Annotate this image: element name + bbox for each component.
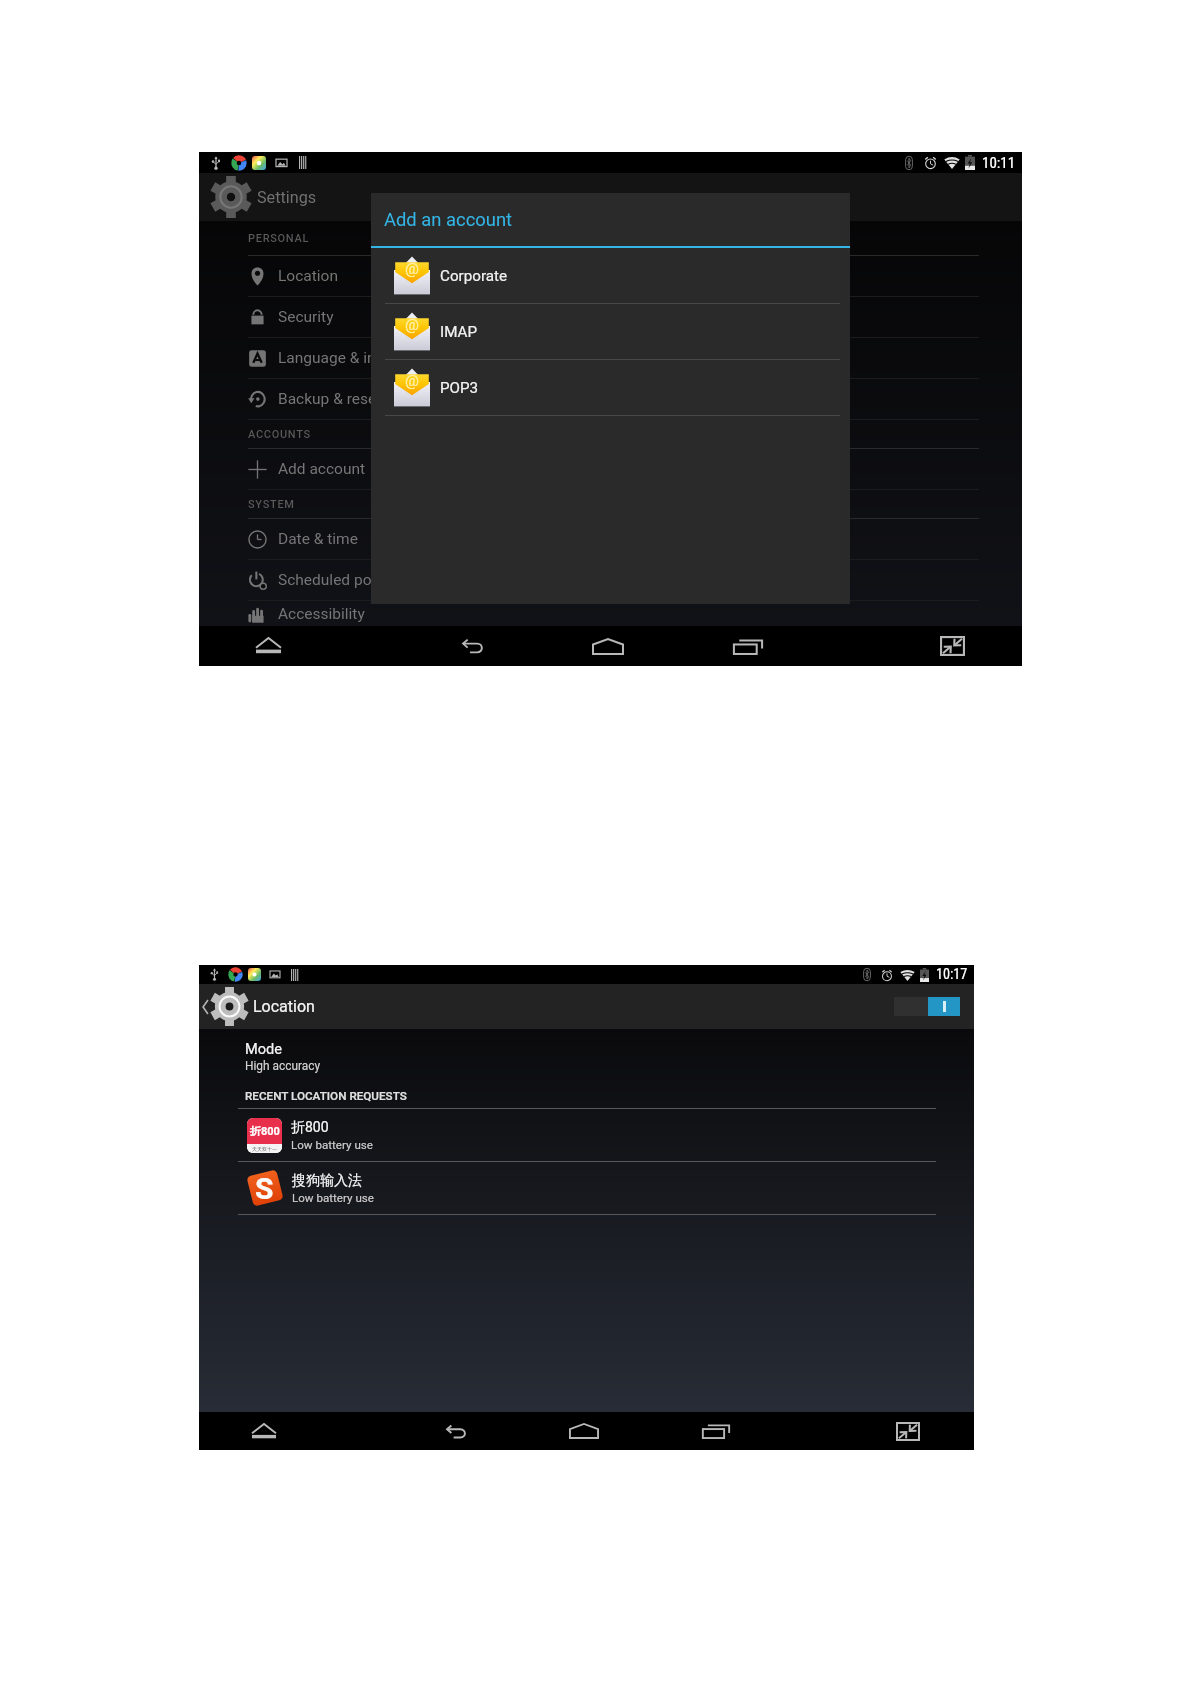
staticText: Language & input [278, 349, 398, 367]
staticText: 折800 [291, 1119, 329, 1137]
staticText: @ [405, 260, 419, 278]
button[interactable]: Accessibility [248, 601, 979, 626]
button[interactable]: Shrink screen [842, 1412, 974, 1450]
staticText: PERSONAL [248, 232, 310, 245]
button[interactable]: S [247, 1162, 936, 1214]
staticText: Location [253, 997, 315, 1016]
button[interactable]: Back [402, 626, 542, 666]
staticText: Add account [278, 460, 366, 478]
staticText: Location [278, 267, 338, 285]
button[interactable]: Recent apps [650, 1412, 782, 1450]
staticText: RECENT LOCATION REQUESTS [245, 1089, 407, 1103]
staticText: Low battery use [291, 1138, 373, 1152]
button[interactable]: 折800 [247, 1109, 936, 1161]
button[interactable]: Location on [894, 997, 960, 1016]
button[interactable]: Location [248, 256, 979, 296]
staticText: @ [405, 316, 419, 334]
button[interactable]: @ [385, 304, 840, 359]
staticText: 10:11 [982, 154, 1016, 172]
staticText: Add an account [384, 209, 513, 231]
button[interactable]: Home [518, 1412, 650, 1450]
button[interactable]: Mode [245, 1040, 935, 1073]
staticText: SYSTEM [248, 498, 295, 511]
staticText: Mode [245, 1040, 283, 1057]
button[interactable]: Backup & reset [248, 379, 979, 419]
staticText: POP3 [440, 379, 479, 397]
button[interactable]: Navigate up [199, 984, 327, 1029]
button[interactable]: Hide navigation [198, 626, 338, 666]
button[interactable]: Add account [248, 449, 979, 489]
staticText: Scheduled power on & off [278, 571, 455, 589]
button[interactable]: Security [248, 297, 979, 337]
staticText: S [255, 1171, 274, 1206]
button[interactable]: Date & time [248, 519, 979, 559]
staticText: 10:17 [936, 966, 968, 983]
button[interactable]: Home [538, 626, 678, 666]
staticText: Corporate [440, 267, 508, 285]
button[interactable]: Scheduled power on & off [248, 560, 979, 600]
staticText: @ [405, 372, 419, 390]
staticText: Settings [257, 188, 317, 207]
button[interactable]: @ [385, 360, 840, 415]
button[interactable]: Language & input [248, 338, 979, 378]
staticText: Low battery use [292, 1191, 374, 1205]
button[interactable]: Recent apps [678, 626, 818, 666]
staticText: Accessibility [278, 605, 365, 623]
staticText: Backup & reset [278, 390, 382, 408]
staticText: Security [278, 308, 334, 326]
button[interactable]: Hide navigation [198, 1412, 330, 1450]
staticText: 搜狗输入法 [292, 1172, 362, 1190]
staticText: 折800 [250, 1124, 280, 1138]
button[interactable]: Back [390, 1412, 522, 1450]
staticText: ACCOUNTS [248, 428, 311, 441]
button[interactable]: Shrink screen [882, 626, 1022, 666]
staticText: High accuracy [245, 1059, 321, 1073]
staticText: IMAP [440, 323, 478, 341]
button[interactable]: Settings [199, 173, 329, 221]
staticText: Date & time [278, 530, 358, 548]
button[interactable]: @ [385, 248, 840, 303]
staticText: 天天双十一 [252, 1146, 277, 1152]
